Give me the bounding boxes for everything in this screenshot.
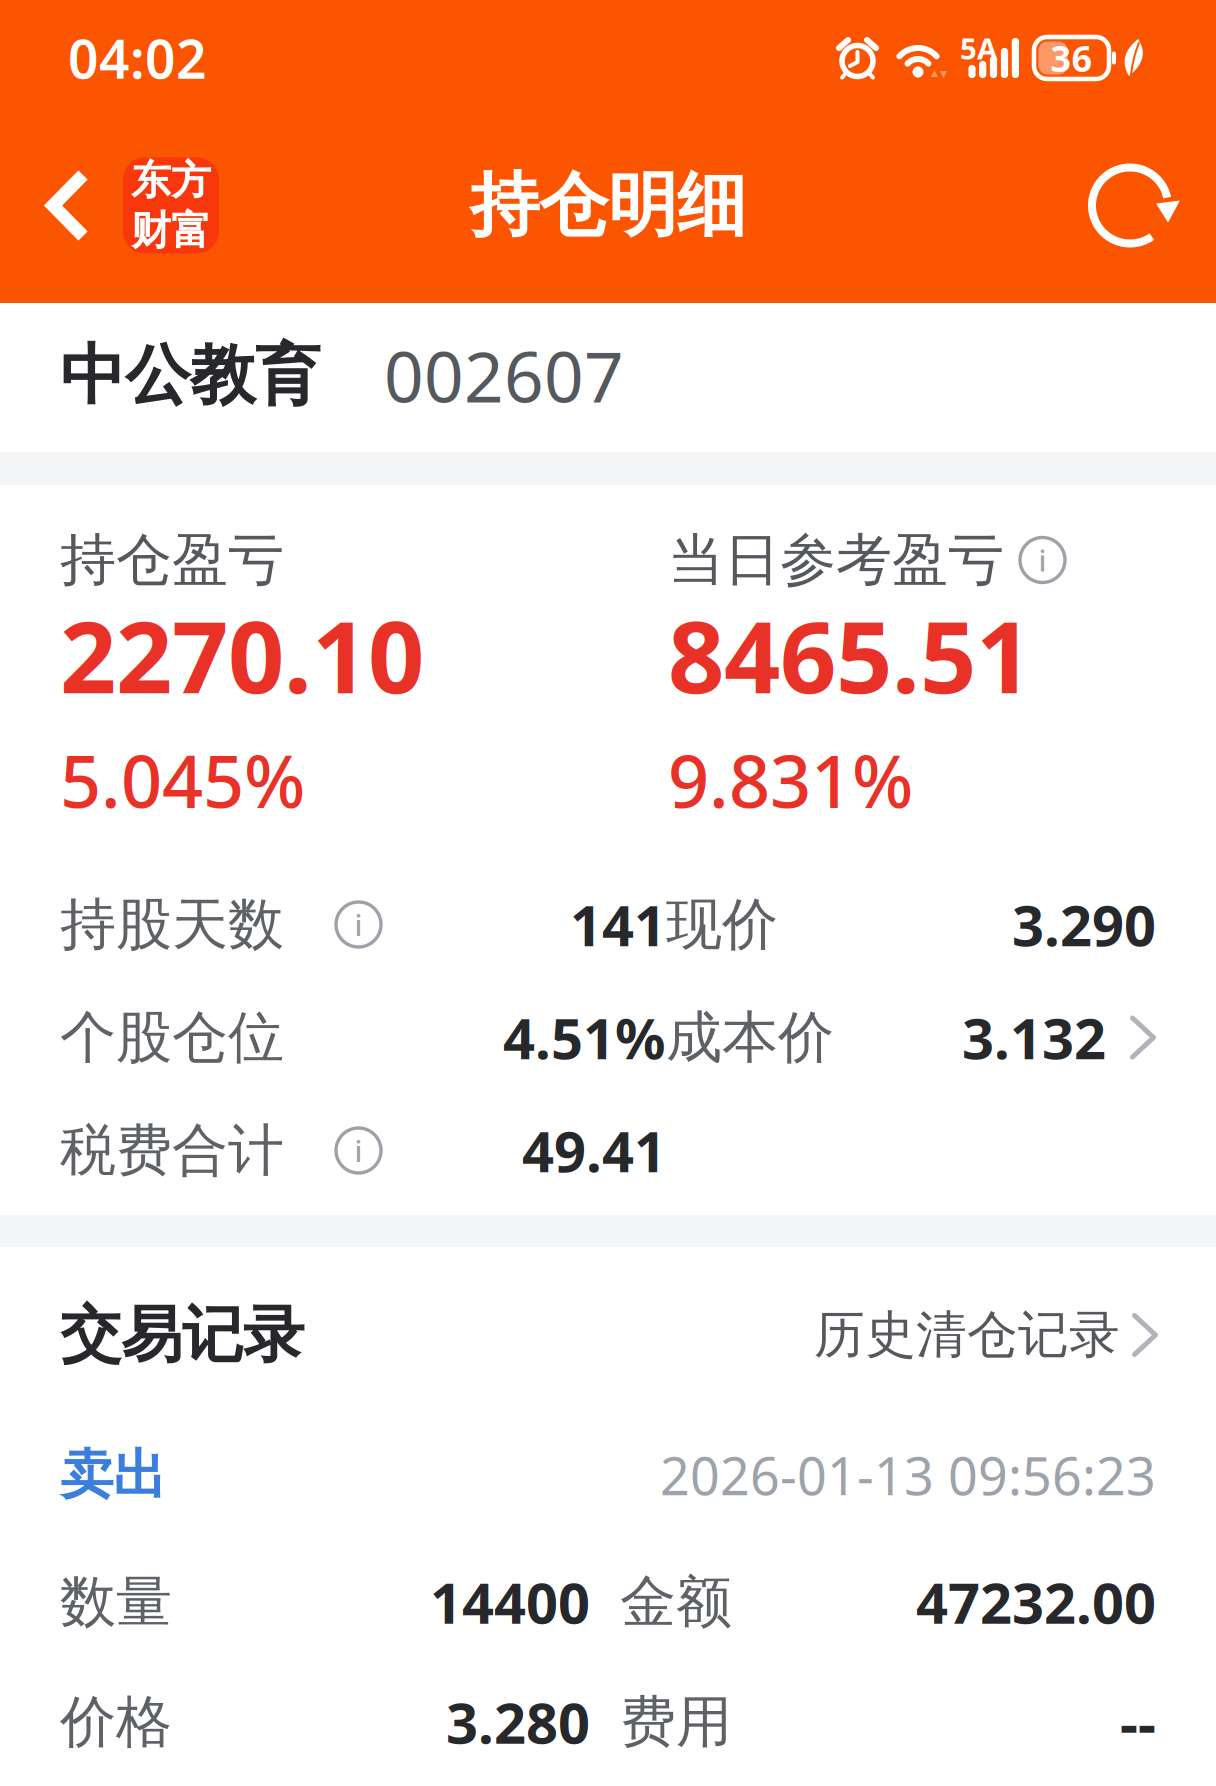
- staticText: 04:02: [68, 23, 207, 93]
- staticText: 费用: [620, 1688, 732, 1756]
- staticText: 3.132: [962, 1000, 1106, 1075]
- staticText: 2026-01-13 09:56:23: [660, 1440, 1156, 1510]
- staticText: 47232.00: [916, 1565, 1156, 1639]
- staticText: 5.045%: [60, 732, 305, 828]
- staticText: 持仓盈亏: [60, 526, 284, 594]
- staticText: 3.290: [1012, 887, 1156, 962]
- button[interactable]: 持股天数说明: [336, 902, 381, 947]
- button[interactable]: 当日参考盈亏说明: [1020, 537, 1065, 582]
- staticText: i: [354, 1131, 362, 1170]
- staticText: 金额: [620, 1568, 732, 1636]
- staticText: 中公教育: [60, 335, 320, 416]
- staticText: 当日参考盈亏: [668, 526, 1004, 594]
- staticText: 个股仓位: [60, 1003, 284, 1072]
- staticText: 历史清仓记录: [814, 1304, 1120, 1366]
- staticText: --: [1120, 1685, 1156, 1759]
- staticText: 002607: [384, 329, 624, 422]
- staticText: 交易记录: [60, 1297, 304, 1373]
- staticText: 2270.10: [60, 589, 424, 720]
- staticText: i: [1038, 540, 1046, 579]
- button[interactable]: 历史清仓记录: [814, 1304, 1158, 1366]
- button[interactable]: 东方财富: [123, 157, 219, 253]
- staticText: 3.280: [446, 1685, 590, 1759]
- staticText: 9.831%: [668, 732, 913, 828]
- staticText: 税费合计: [60, 1116, 284, 1185]
- staticText: 数量: [60, 1568, 172, 1636]
- button[interactable]: 刷新: [1088, 163, 1216, 247]
- staticText: 8465.51: [668, 589, 1032, 720]
- staticText: 49.41: [522, 1113, 666, 1188]
- staticText: 持股天数: [60, 890, 284, 959]
- staticText: 14400: [430, 1565, 590, 1639]
- staticText: 成本价: [666, 1003, 834, 1072]
- staticText: 现价: [666, 890, 778, 959]
- staticText: 财富: [131, 206, 211, 255]
- staticText: 4.51%: [503, 1000, 666, 1075]
- staticText: 东方: [131, 156, 211, 205]
- staticText: i: [354, 905, 362, 944]
- staticText: 141: [570, 887, 666, 962]
- staticText: 价格: [60, 1688, 172, 1756]
- staticText: 卖出: [60, 1442, 166, 1508]
- staticText: 5A: [960, 28, 997, 67]
- button[interactable]: 返回: [0, 168, 123, 242]
- button[interactable]: 个股仓位: [0, 981, 1216, 1094]
- staticText: 36: [1050, 34, 1092, 82]
- staticText: 持仓明细: [470, 163, 746, 248]
- button[interactable]: 税费合计说明: [336, 1128, 381, 1173]
